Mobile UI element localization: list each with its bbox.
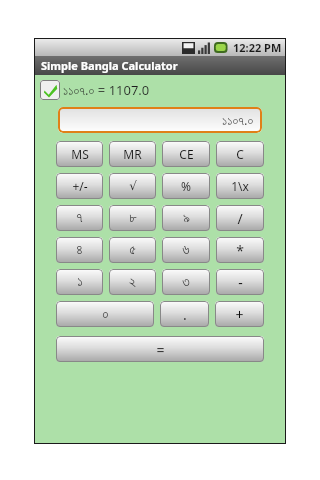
other: Mobile data 3G [182,42,195,54]
staticText: . [183,305,187,324]
staticText: C [236,146,244,162]
staticText: ৫ [129,243,136,257]
staticText: / [237,209,243,228]
button[interactable]: ৮ [109,205,156,231]
button[interactable]: ৫ [109,237,156,263]
button[interactable]: % [162,173,210,199]
staticText: ১ [77,275,83,289]
button[interactable]: = [56,336,264,362]
staticText: ০ [102,307,109,321]
button[interactable]: ০ [56,301,154,327]
staticText: + [235,305,244,324]
staticText: CE [179,146,194,162]
staticText: % [181,178,191,194]
staticText: ৭ [76,211,83,225]
staticText: = [156,340,165,359]
staticText: MR [123,146,142,162]
staticText: ৯ [183,211,190,225]
button[interactable]: * [216,237,264,263]
button[interactable]: 1\x [216,173,264,199]
button[interactable]: ১১০৭.০ [58,107,262,133]
staticText: ৪ [76,243,83,257]
button[interactable]: + [215,301,264,327]
staticText: 12:22 PM [233,40,282,55]
button[interactable]: ৪ [56,237,103,263]
button[interactable]: C [216,141,264,167]
button[interactable]: - [216,269,264,295]
button[interactable]: MS [56,141,103,167]
staticText: * [236,241,244,260]
staticText: Simple Bangla Calculator [41,58,178,73]
button[interactable]: ১১০৭.০ = 1107.0 [40,80,150,100]
button[interactable]: ১ [56,269,103,295]
staticText: √ [129,179,137,193]
button[interactable]: √ [109,173,156,199]
button[interactable]: CE [162,141,210,167]
staticText: ১১০৭.০ = 1107.0 [63,81,150,99]
staticText: ৮ [129,211,137,225]
button[interactable]: / [216,205,264,231]
staticText: ৩ [182,275,190,289]
staticText: ১১০৭.০ [222,111,254,129]
staticText: 1\x [231,178,249,194]
button[interactable]: MR [109,141,156,167]
staticText: ২ [129,275,136,289]
staticText: MS [71,146,89,162]
button[interactable]: ৭ [56,205,103,231]
other: Signal strength [198,42,211,54]
other: Battery charging [214,42,229,53]
button[interactable]: +/- [56,173,103,199]
staticText: +/- [72,178,88,194]
button[interactable]: ৬ [162,237,210,263]
button[interactable]: ৯ [162,205,210,231]
button[interactable]: ২ [109,269,156,295]
button[interactable]: ৩ [162,269,210,295]
staticText: - [238,273,243,292]
button[interactable]: . [160,301,209,327]
staticText: ৬ [182,243,190,257]
